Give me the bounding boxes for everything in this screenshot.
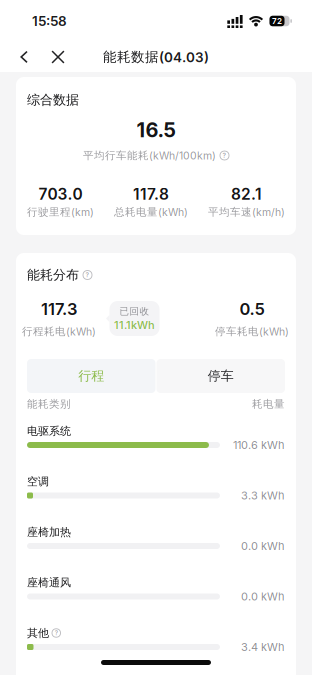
staticText: 空调 — [27, 475, 49, 488]
button[interactable]: 能耗分布说明 — [83, 270, 92, 279]
staticText: 已回收 — [119, 305, 149, 317]
staticText: 0.0 kWh — [241, 590, 285, 603]
staticText: 82.1 — [231, 185, 262, 203]
staticText: 110.6 kWh — [233, 438, 285, 452]
staticText: 703.0 — [38, 185, 82, 203]
staticText: 11.1kWh — [114, 318, 155, 332]
staticText: 3.3 kWh — [241, 489, 285, 502]
staticText: 座椅通风 — [27, 576, 71, 589]
staticText: ? — [222, 152, 226, 159]
staticText: ? — [85, 271, 89, 279]
staticText: 电驱系统 — [27, 424, 71, 438]
button[interactable]: 停车 — [156, 359, 285, 393]
button[interactable]: 其他能耗说明 — [52, 629, 60, 637]
staticText: 停车 — [208, 368, 234, 384]
button[interactable]: 平均行车能耗说明 — [220, 151, 229, 160]
button[interactable]: 关闭 — [51, 42, 64, 71]
button[interactable]: 返回 — [0, 43, 28, 71]
staticText: 综合数据 — [27, 92, 79, 108]
staticText: 行程耗电(kWh) — [22, 325, 96, 338]
staticText: 停车耗电(kWh) — [215, 325, 289, 338]
staticText: 117.3 — [41, 299, 77, 319]
staticText: 能耗数据(04.03) — [103, 48, 209, 65]
staticText: 行程 — [78, 368, 104, 384]
staticText: 总耗电量(kWh) — [114, 205, 188, 219]
staticText: 耗电量 — [252, 397, 285, 411]
button[interactable]: 行程 — [27, 359, 155, 393]
staticText: 行驶里程(km) — [27, 205, 94, 219]
staticText: 平均行车能耗(kWh/100km) — [83, 149, 216, 162]
staticText: 座椅加热 — [27, 525, 71, 539]
staticText: 15:58 — [32, 13, 67, 29]
staticText: 0.0 kWh — [241, 539, 285, 553]
staticText: 其他 — [27, 626, 49, 640]
staticText: 117.8 — [133, 185, 169, 203]
staticText: 平均车速(km/h) — [208, 205, 285, 219]
staticText: 0.5 — [239, 299, 264, 319]
staticText: 能耗分布 — [27, 267, 79, 283]
staticText: 16.5 — [136, 118, 175, 142]
staticText: 能耗类别 — [27, 397, 71, 411]
staticText: 72 — [272, 16, 282, 26]
staticText: ? — [55, 629, 58, 637]
staticText: 3.4 kWh — [241, 640, 285, 654]
